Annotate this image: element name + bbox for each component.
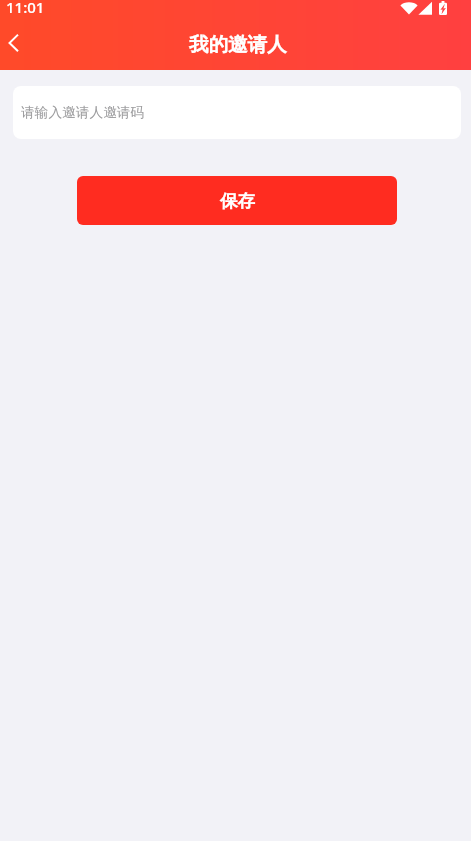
staticText: 保存 — [220, 190, 255, 212]
button[interactable]: 保存 — [77, 176, 397, 225]
staticText: 请输入邀请人邀请码 — [21, 104, 145, 121]
button[interactable]: Back — [0, 24, 34, 68]
button[interactable]: 请输入邀请人邀请码 — [13, 86, 461, 139]
staticText: 我的邀请人 — [189, 32, 287, 57]
staticText: 11:01 — [6, 0, 45, 17]
